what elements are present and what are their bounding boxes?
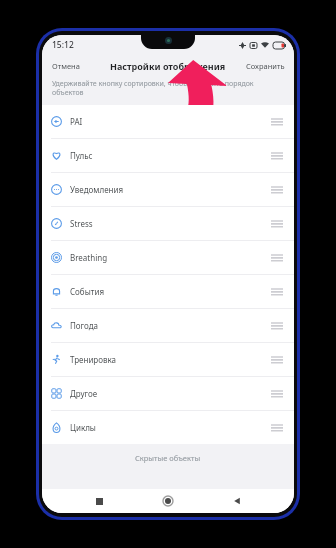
button[interactable]: Отмена [48,59,84,73]
staticText: Stress [70,218,93,229]
button[interactable]: Reorder События [269,284,285,300]
button[interactable]: Пульс [42,139,294,172]
staticText: Пульс [70,150,93,161]
staticText: Breathing [70,252,108,263]
button[interactable]: Циклы [42,411,294,444]
button[interactable]: Reorder Breathing [269,250,285,266]
staticText: Уведомления [70,184,124,195]
button[interactable]: Reorder Пульс [269,148,285,164]
button[interactable]: Home [156,489,180,513]
button[interactable]: Reorder Циклы [269,420,285,436]
staticText: Удерживайте кнопку сортировки, чтобы изм… [52,79,282,97]
button[interactable]: Breathing [42,241,294,274]
staticText: PAI [70,116,83,127]
button[interactable]: Уведомления [42,173,294,206]
staticText: Скрытые объекты [135,453,201,463]
staticText: Циклы [70,422,96,433]
button[interactable]: Recents [87,489,111,513]
button[interactable]: Reorder Stress [269,216,285,232]
button[interactable]: Погода [42,309,294,342]
button[interactable]: Тренировка [42,343,294,376]
staticText: Настройки отображения [110,60,226,72]
staticText: Отмена [52,61,80,71]
button[interactable]: Другое [42,377,294,410]
button[interactable]: Сохранить [242,59,289,73]
button[interactable]: Reorder Тренировка [269,352,285,368]
staticText: Другое [70,388,98,399]
staticText: Сохранить [246,61,285,71]
staticText: Тренировка [70,354,117,365]
button[interactable]: PAI [42,105,294,138]
button[interactable]: Back [225,489,249,513]
staticText: События [70,286,105,297]
button[interactable]: Reorder Погода [269,318,285,334]
button[interactable]: Reorder Уведомления [269,182,285,198]
button[interactable]: События [42,275,294,308]
button[interactable]: Stress [42,207,294,240]
button[interactable]: Reorder Другое [269,386,285,402]
staticText: 15:12 [52,39,74,51]
button[interactable]: Reorder PAI [269,114,285,130]
staticText: Погода [70,320,99,331]
